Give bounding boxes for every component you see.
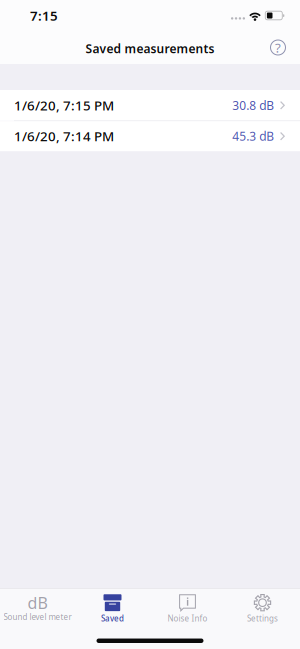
- staticText: Settings: [247, 613, 278, 624]
- button[interactable]: Settings: [225, 589, 300, 629]
- button[interactable]: Help: [263, 33, 293, 61]
- staticText: 7:15: [30, 7, 58, 24]
- staticText: 1/6/20, 7:15 PM: [14, 96, 114, 114]
- staticText: Noise Info: [167, 613, 207, 624]
- button[interactable]: Saved: [75, 589, 150, 629]
- button[interactable]: dB: [0, 589, 75, 629]
- button[interactable]: Noise Info: [150, 589, 225, 629]
- button[interactable]: 1/6/20, 7:14 PM: [0, 121, 300, 151]
- staticText: Saved: [101, 613, 124, 624]
- staticText: ?: [275, 39, 281, 56]
- staticText: dB: [27, 592, 47, 613]
- button[interactable]: 1/6/20, 7:15 PM: [0, 90, 300, 121]
- staticText: Sound level meter: [3, 612, 71, 622]
- staticText: 1/6/20, 7:14 PM: [14, 127, 114, 145]
- staticText: Saved measurements: [85, 40, 214, 56]
- staticText: 30.8 dB: [232, 97, 274, 113]
- staticText: 45.3 dB: [232, 128, 274, 144]
